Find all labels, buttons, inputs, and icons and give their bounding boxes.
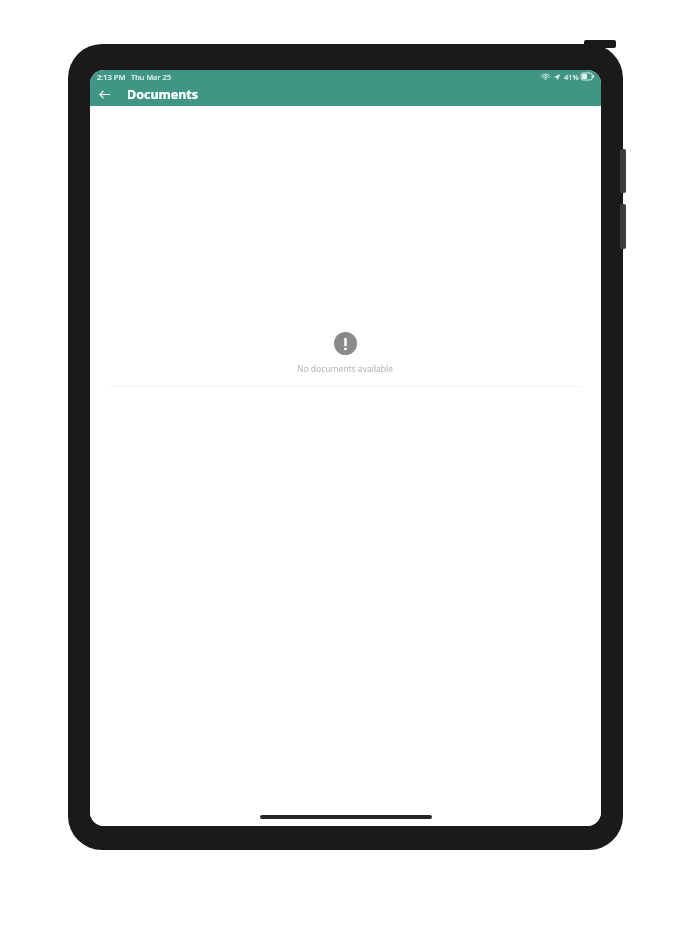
button[interactable]: Back bbox=[90, 83, 118, 106]
staticText: Documents bbox=[127, 86, 199, 103]
staticText: Thu Mar 25 bbox=[131, 72, 172, 82]
staticText: No documents available bbox=[297, 363, 394, 375]
staticText: 41% bbox=[564, 72, 579, 82]
staticText: 2:13 PM bbox=[97, 72, 126, 82]
